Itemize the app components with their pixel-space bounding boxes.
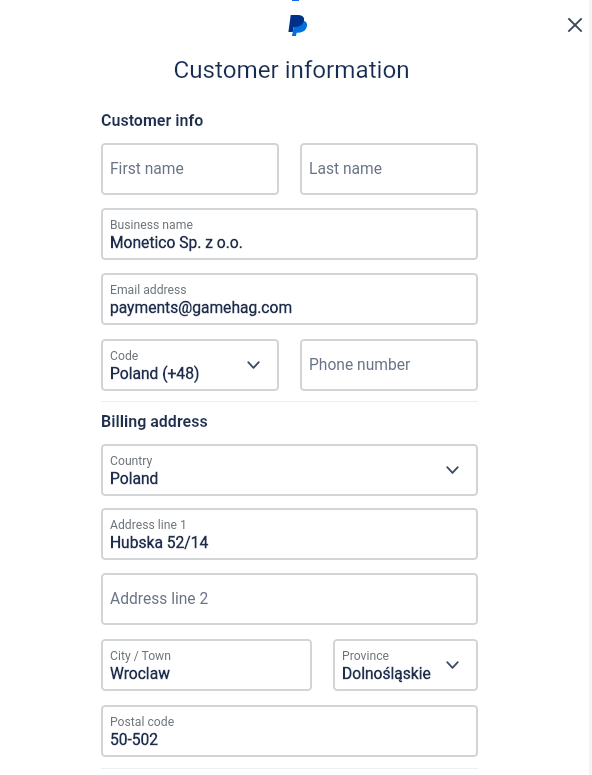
staticText: Country xyxy=(110,454,153,468)
staticText: Wroclaw xyxy=(110,665,170,683)
staticText: City / Town xyxy=(110,649,172,663)
staticText: Code xyxy=(110,349,139,363)
staticText: Business name xyxy=(110,218,193,232)
button[interactable]: Phone number xyxy=(300,339,478,391)
staticText: Dolnośląskie xyxy=(342,665,431,683)
staticText: Hubska 52/14 xyxy=(110,534,209,552)
button[interactable]: Email address xyxy=(101,273,478,325)
staticText: Last name xyxy=(309,160,382,178)
button[interactable]: Address line 2 xyxy=(101,573,478,625)
button[interactable]: Close xyxy=(558,8,590,40)
staticText: Address line 2 xyxy=(110,590,209,608)
staticText: First name xyxy=(110,160,184,178)
staticText: Email address xyxy=(110,283,187,297)
staticText: Phone number xyxy=(309,356,411,374)
staticText: Poland xyxy=(110,470,159,488)
staticText: Customer information xyxy=(173,56,410,84)
button[interactable]: Business name xyxy=(101,208,478,260)
staticText: 50-502 xyxy=(110,731,159,749)
staticText: Monetico Sp. z o.o. xyxy=(110,234,243,252)
staticText: Poland (+48) xyxy=(110,365,200,383)
button[interactable]: Province xyxy=(333,639,478,691)
staticText: Customer info xyxy=(101,111,204,130)
staticText: payments@gamehag.com xyxy=(110,299,293,317)
staticText: Postal code xyxy=(110,715,175,729)
button[interactable]: Country xyxy=(101,444,478,496)
staticText: Address line 1 xyxy=(110,518,187,532)
button[interactable]: Code xyxy=(101,339,279,391)
button[interactable]: City / Town xyxy=(101,639,312,691)
button[interactable]: Postal code xyxy=(101,705,478,757)
staticText: Province xyxy=(342,649,390,663)
button[interactable]: Last name xyxy=(300,143,478,195)
button[interactable]: Address line 1 xyxy=(101,508,478,560)
button[interactable]: First name xyxy=(101,143,279,195)
staticText: Billing address xyxy=(101,412,208,431)
